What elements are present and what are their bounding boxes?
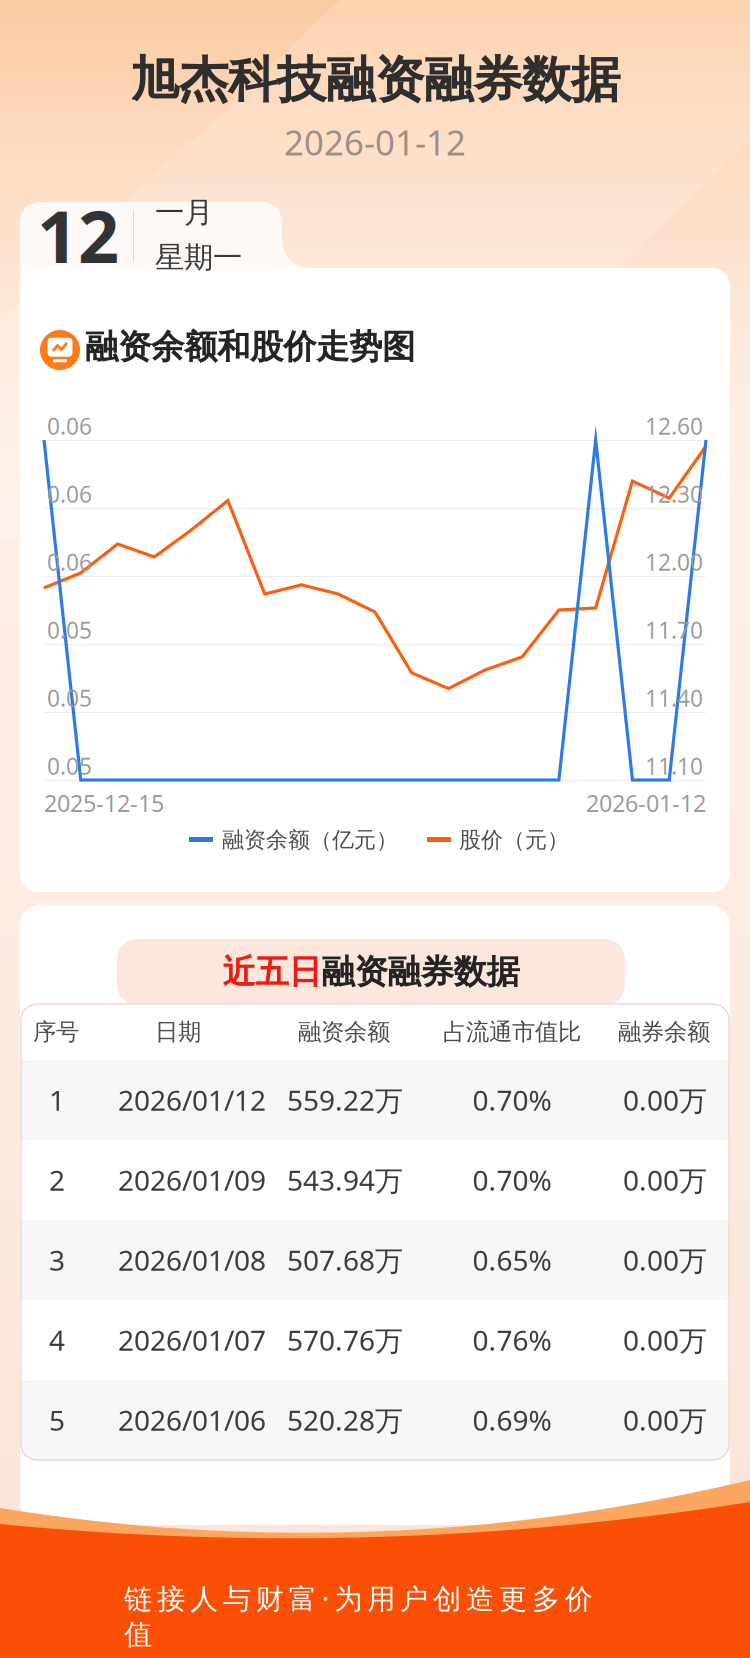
staticText: 5 bbox=[49, 1401, 65, 1439]
staticText: 0.69% bbox=[472, 1401, 551, 1439]
staticText: 融资余额和股价走势图 bbox=[85, 326, 415, 368]
staticText: 2026/01/09 bbox=[118, 1161, 266, 1199]
staticText: 2026/01/06 bbox=[118, 1401, 266, 1439]
staticText: 融资余额 bbox=[298, 1017, 390, 1047]
staticText: 0.70% bbox=[472, 1161, 551, 1199]
staticText: 0.05 bbox=[47, 683, 92, 713]
staticText: 旭杰科技融资融券数据 bbox=[130, 49, 620, 111]
staticText: 一月 bbox=[155, 194, 213, 231]
staticText: 融券余额 bbox=[618, 1017, 710, 1047]
staticText: 0.06 bbox=[47, 479, 92, 509]
staticText: 星期一 bbox=[155, 239, 242, 276]
staticText: 0.06 bbox=[47, 411, 92, 441]
staticText: 11.40 bbox=[645, 683, 703, 713]
staticText: 0.00万 bbox=[623, 1081, 707, 1119]
staticText: 2026/01/12 bbox=[118, 1081, 266, 1119]
staticText: 4 bbox=[49, 1321, 65, 1359]
staticText: 2025-12-15 bbox=[44, 787, 164, 819]
staticText: 链接人与财富·为用户创造更多价值 bbox=[124, 1579, 626, 1617]
staticText: 520.28万 bbox=[287, 1401, 403, 1439]
staticText: 12.60 bbox=[645, 411, 703, 441]
staticText: 融资融券数据 bbox=[321, 951, 519, 993]
staticText: 日期 bbox=[155, 1017, 201, 1047]
staticText: 570.76万 bbox=[287, 1321, 403, 1359]
staticText: 0.00万 bbox=[623, 1161, 707, 1199]
staticText: 507.68万 bbox=[287, 1241, 403, 1279]
staticText: 543.94万 bbox=[287, 1161, 403, 1199]
staticText: 2026/01/07 bbox=[118, 1321, 266, 1359]
staticText: 0.00万 bbox=[623, 1321, 707, 1359]
staticText: 融资余额（亿元） bbox=[222, 826, 398, 854]
staticText: 0.05 bbox=[47, 751, 92, 781]
staticText: 0.76% bbox=[472, 1321, 551, 1359]
staticText: 0.00万 bbox=[623, 1401, 707, 1439]
staticText: 0.00万 bbox=[623, 1241, 707, 1279]
staticText: 11.70 bbox=[645, 615, 703, 645]
staticText: 12.30 bbox=[645, 479, 703, 509]
staticText: 近五日 bbox=[222, 951, 321, 993]
staticText: 2026/01/08 bbox=[118, 1241, 266, 1279]
staticText: 0.65% bbox=[472, 1241, 551, 1279]
staticText: 0.06 bbox=[47, 547, 92, 577]
staticText: 股价（元） bbox=[459, 826, 569, 854]
staticText: 559.22万 bbox=[287, 1081, 403, 1119]
staticText: 占流通市值比 bbox=[443, 1017, 581, 1047]
staticText: 3 bbox=[49, 1241, 65, 1279]
staticText: 2 bbox=[49, 1161, 65, 1199]
staticText: 序号 bbox=[33, 1017, 79, 1047]
staticText: 1 bbox=[49, 1081, 65, 1119]
staticText: 2026-01-12 bbox=[586, 787, 706, 819]
staticText: 11.10 bbox=[645, 751, 703, 781]
staticText: 0.70% bbox=[472, 1081, 551, 1119]
staticText: 0.05 bbox=[47, 615, 92, 645]
staticText: 12.00 bbox=[645, 547, 703, 577]
staticText: 12 bbox=[37, 186, 119, 284]
staticText: 2026-01-12 bbox=[284, 118, 466, 166]
